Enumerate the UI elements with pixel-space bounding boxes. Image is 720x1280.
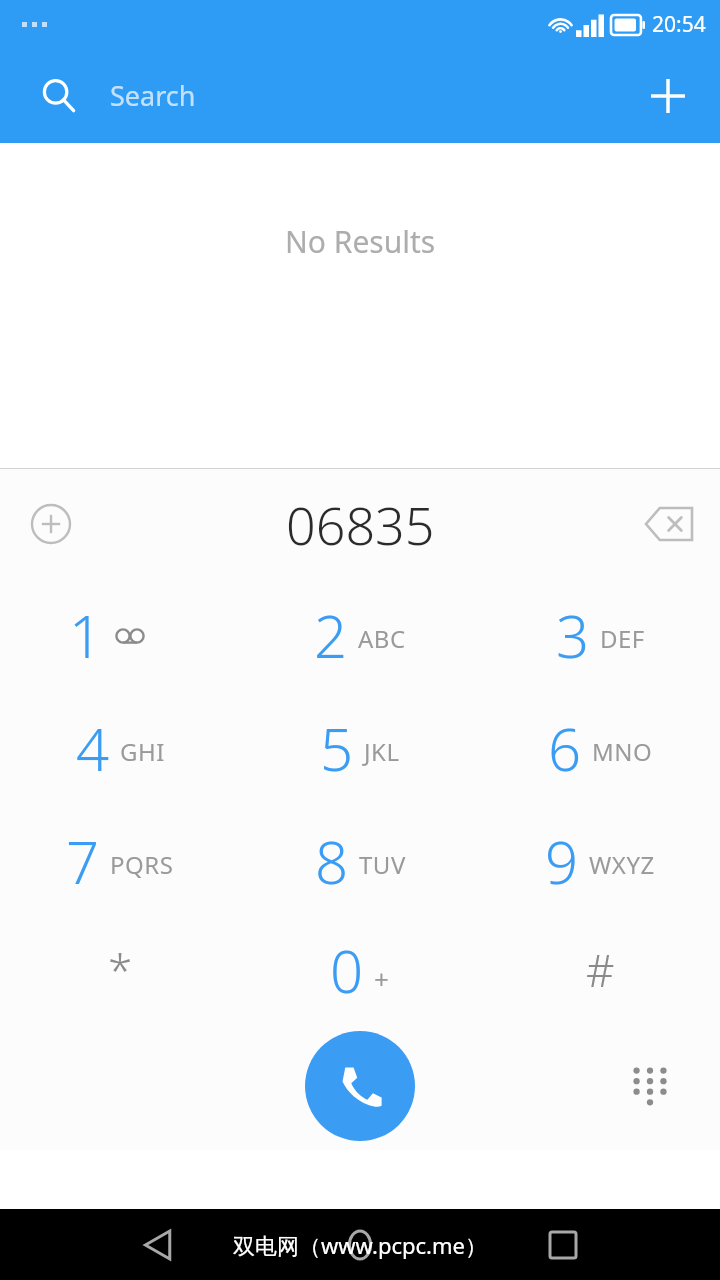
staticText: 1 (69, 596, 103, 675)
staticText: 7 (66, 822, 100, 901)
staticText: WXYZ (589, 848, 655, 881)
button[interactable]: 1 (0, 579, 240, 692)
staticText: 2 (314, 596, 348, 675)
staticText: 双电网（www.pcpc.me） (233, 1230, 487, 1260)
button[interactable]: 5 (240, 692, 480, 805)
button[interactable]: Backspace (632, 487, 706, 561)
button[interactable]: # (480, 918, 720, 1022)
button[interactable]: 2 (240, 579, 480, 692)
staticText: Search (110, 77, 196, 114)
staticText: ABC (358, 622, 406, 655)
button[interactable]: Back (113, 1209, 203, 1280)
button[interactable]: * (0, 918, 240, 1022)
staticText: 0 (330, 931, 364, 1010)
button[interactable]: 3 (480, 579, 720, 692)
button[interactable]: Home (315, 1209, 405, 1280)
button[interactable]: 4 (0, 692, 240, 805)
staticText: # (586, 940, 615, 1000)
staticText: PQRS (110, 848, 174, 881)
button[interactable]: 9 (480, 805, 720, 918)
staticText: TUV (359, 848, 406, 881)
button[interactable]: Recent apps (518, 1209, 608, 1280)
staticText: + (374, 961, 390, 996)
button[interactable]: 7 (0, 805, 240, 918)
staticText: 3 (556, 596, 590, 675)
button[interactable]: 0 (240, 918, 480, 1022)
button[interactable]: Add contact (628, 56, 708, 136)
staticText: 5 (320, 709, 354, 788)
button[interactable]: Hide keypad (610, 1046, 690, 1126)
staticText: JKL (364, 735, 400, 768)
button[interactable]: 6 (480, 692, 720, 805)
staticText: No Results (285, 221, 436, 262)
button[interactable]: 8 (240, 805, 480, 918)
staticText: 20:54 (652, 10, 706, 39)
staticText: 4 (76, 709, 110, 788)
button[interactable]: Search (0, 48, 628, 143)
staticText: GHI (120, 735, 165, 768)
staticText: 6 (548, 709, 582, 788)
staticText: 8 (315, 822, 349, 901)
staticText: * (108, 940, 133, 1000)
staticText: 9 (545, 822, 579, 901)
staticText: 06835 (286, 489, 435, 560)
button[interactable]: Add to contacts (14, 487, 88, 561)
button[interactable]: Call (305, 1031, 415, 1141)
staticText: DEF (600, 622, 645, 655)
staticText: MNO (592, 735, 653, 768)
